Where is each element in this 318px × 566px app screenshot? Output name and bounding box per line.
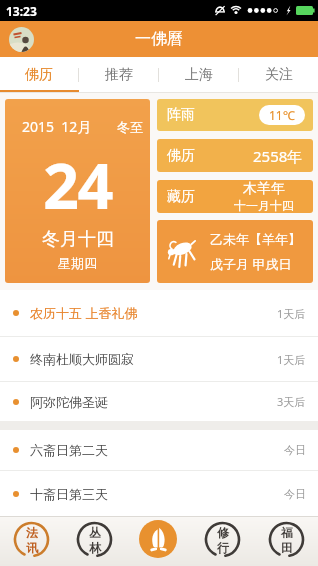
- staticText: 关注: [265, 66, 293, 84]
- staticText: 冬月十四: [42, 228, 114, 251]
- staticText: 阿弥陀佛圣诞: [30, 394, 108, 410]
- staticText: 今日: [284, 443, 306, 457]
- staticText: 24: [43, 142, 113, 228]
- staticText: 推荐: [105, 66, 133, 84]
- staticText: 戊子月 甲戌日: [210, 255, 292, 273]
- staticText: 星期四: [58, 255, 97, 271]
- staticText: 11℃: [269, 107, 295, 123]
- staticText: 佛历: [167, 147, 195, 165]
- staticText: 林: [89, 540, 101, 555]
- staticText: 终南杜顺大师圆寂: [30, 351, 134, 367]
- staticText: 丛: [89, 525, 101, 540]
- staticText: 上海: [185, 66, 213, 84]
- staticText: 冬至: [117, 119, 143, 135]
- staticText: 阵雨: [167, 106, 195, 124]
- staticText: 六斋日第二天: [30, 442, 108, 458]
- staticText: 藏历: [167, 188, 195, 206]
- staticText: 修: [217, 525, 229, 540]
- staticText: 1天后: [277, 306, 306, 321]
- staticText: 2558年: [253, 146, 303, 166]
- staticText: 13:23: [6, 3, 37, 19]
- staticText: 讯: [26, 540, 38, 555]
- staticText: 3天后: [277, 394, 306, 409]
- staticText: 佛历: [25, 66, 53, 84]
- staticText: 2015 12月: [22, 117, 92, 136]
- staticText: 乙未年【羊年】: [210, 231, 301, 247]
- staticText: 木羊年: [243, 180, 285, 198]
- staticText: 农历十五 上香礼佛: [30, 304, 138, 322]
- staticText: 田: [281, 540, 293, 555]
- staticText: 一佛曆: [135, 29, 183, 49]
- staticText: 今日: [284, 487, 306, 501]
- staticText: 行: [217, 540, 229, 555]
- staticText: 福: [281, 525, 293, 540]
- staticText: 1天后: [277, 352, 306, 367]
- staticText: 十一月十四: [234, 198, 294, 213]
- staticText: 法: [26, 525, 38, 540]
- staticText: 十斋日第三天: [30, 486, 108, 502]
